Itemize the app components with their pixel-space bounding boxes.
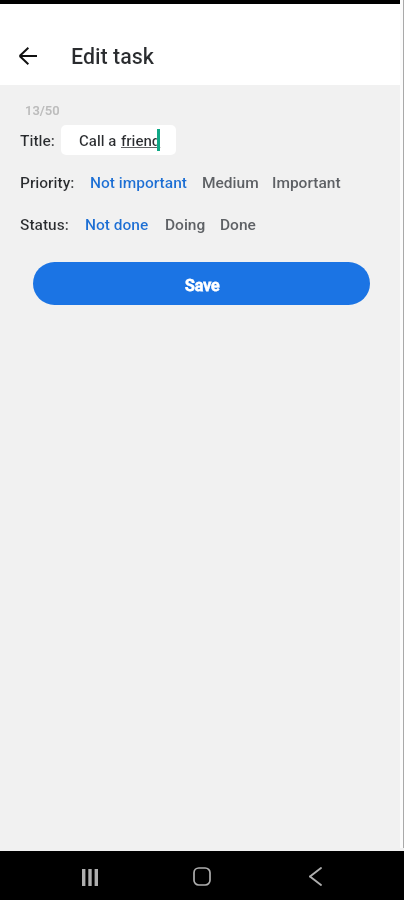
staticText: Done: [220, 216, 256, 234]
button[interactable]: Not done: [85, 216, 149, 234]
button[interactable]: Done: [220, 216, 256, 234]
staticText: Medium: [202, 174, 259, 192]
button[interactable]: Navigate up: [8, 36, 47, 75]
staticText: Not done: [85, 216, 149, 234]
button[interactable]: Doing: [165, 216, 206, 234]
button[interactable]: Important: [272, 174, 341, 192]
staticText: Edit task: [71, 44, 155, 69]
staticText: Title:: [20, 132, 55, 150]
staticText: Save: [185, 276, 220, 295]
staticText: Not important: [90, 174, 187, 192]
button[interactable]: Not important: [90, 174, 187, 192]
button[interactable]: Home: [182, 852, 222, 900]
staticText: friend: [121, 132, 161, 150]
button[interactable]: Save: [33, 262, 370, 305]
staticText: Important: [272, 174, 341, 192]
staticText: Call a: [79, 132, 121, 150]
button[interactable]: Recent apps: [70, 853, 110, 900]
button[interactable]: Call a: [61, 125, 176, 155]
staticText: Priority:: [20, 174, 75, 192]
staticText: Status:: [20, 216, 69, 234]
staticText: Doing: [165, 216, 206, 234]
button[interactable]: Back: [295, 852, 335, 900]
staticText: 13/50: [25, 103, 60, 118]
button[interactable]: Medium: [202, 174, 259, 192]
